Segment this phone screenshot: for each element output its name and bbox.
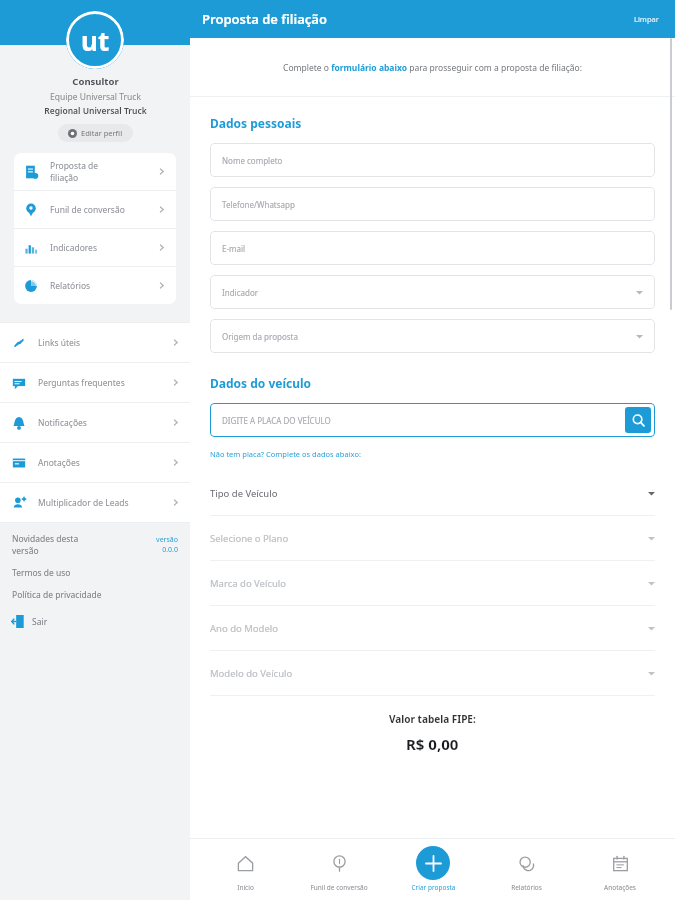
staticText: Proposta de filiação: [50, 160, 99, 184]
button[interactable]: Selecione o Plano: [210, 516, 655, 561]
staticText: Política de privacidade: [12, 589, 102, 601]
button[interactable]: Limpar: [630, 10, 663, 28]
button[interactable]: Sair: [0, 615, 190, 628]
button[interactable]: Anotações: [581, 846, 659, 892]
staticText: Criar proposta: [411, 883, 456, 892]
button[interactable]: Ano do Modelo: [210, 606, 655, 651]
button[interactable]: Buscar placa: [625, 407, 651, 433]
staticText: Nome completo: [222, 155, 283, 166]
button[interactable]: Editar perfil: [58, 124, 133, 142]
staticText: Perguntas frequentes: [38, 377, 125, 389]
button[interactable]: E-mail: [210, 231, 655, 265]
button[interactable]: Relatórios: [14, 267, 176, 304]
staticText: Equipe Universal Truck: [50, 91, 141, 103]
staticText: Relatórios: [511, 883, 542, 892]
button[interactable]: Política de privacidade: [0, 589, 190, 601]
button[interactable]: Novidades desta versão: [0, 533, 190, 557]
button[interactable]: Links úteis: [0, 323, 190, 362]
button[interactable]: Perguntas frequentes: [0, 363, 190, 402]
staticText: Dados pessoais: [210, 115, 302, 131]
button[interactable]: Proposta de filiação: [14, 153, 176, 190]
button[interactable]: Relatórios: [487, 846, 565, 892]
staticText: Sair: [32, 616, 48, 628]
button[interactable]: Indicadores: [14, 229, 176, 266]
button[interactable]: Modelo do Veículo: [210, 651, 655, 696]
staticText: Ano do Modelo: [210, 622, 278, 635]
staticText: Dados do veículo: [210, 375, 312, 391]
staticText: Anotações: [604, 883, 636, 892]
staticText: Multiplicador de Leads: [38, 497, 129, 509]
staticText: Tipo de Veículo: [210, 487, 278, 500]
staticText: Complete o formulário abaixo para prosse…: [283, 62, 582, 74]
staticText: Indicadores: [50, 242, 97, 254]
staticText: Limpar: [634, 14, 659, 24]
button[interactable]: Início: [206, 846, 284, 892]
button[interactable]: Funil de conversão: [300, 846, 378, 892]
staticText: Funil de conversão: [310, 883, 368, 892]
staticText: Novidades desta versão: [12, 533, 79, 557]
staticText: Início: [237, 883, 254, 892]
button[interactable]: Marca do Veículo: [210, 561, 655, 606]
button[interactable]: Indicador: [210, 275, 655, 309]
staticText: versão 0.0.0: [156, 535, 178, 555]
staticText: Anotações: [38, 457, 80, 469]
button[interactable]: Funil de conversão: [14, 191, 176, 228]
staticText: Proposta de filiação: [202, 10, 327, 28]
button[interactable]: Notificações: [0, 403, 190, 442]
staticText: Origem da proposta: [222, 331, 298, 342]
button[interactable]: Termos de uso: [0, 567, 190, 579]
button[interactable]: Origem da proposta: [210, 319, 655, 353]
staticText: Telefone/Whatsapp: [222, 199, 295, 210]
staticText: Não tem placa? Complete os dados abaixo:: [210, 449, 361, 459]
staticText: Editar perfil: [81, 128, 123, 138]
staticText: Indicador: [222, 287, 259, 298]
button[interactable]: Anotações: [0, 443, 190, 482]
staticText: Termos de uso: [12, 567, 71, 579]
staticText: Links úteis: [38, 337, 81, 349]
button[interactable]: DIGITE A PLACA DO VEÍCULO: [222, 415, 625, 426]
staticText: DIGITE A PLACA DO VEÍCULO: [222, 415, 331, 426]
staticText: Marca do Veículo: [210, 577, 287, 590]
staticText: R$ 0,00: [406, 734, 459, 754]
button[interactable]: Criar proposta: [394, 846, 472, 892]
button[interactable]: Multiplicador de Leads: [0, 483, 190, 522]
staticText: E-mail: [222, 243, 246, 254]
staticText: Selecione o Plano: [210, 532, 289, 545]
button[interactable]: Não tem placa? Complete os dados abaixo:: [210, 449, 361, 459]
button[interactable]: Nome completo: [210, 143, 655, 177]
staticText: Relatórios: [50, 280, 91, 292]
button[interactable]: Telefone/Whatsapp: [210, 187, 655, 221]
staticText: Valor tabela FIPE:: [389, 712, 476, 726]
staticText: Regional Universal Truck: [44, 105, 147, 117]
staticText: ut: [81, 23, 110, 58]
button[interactable]: Tipo de Veículo: [210, 471, 655, 516]
staticText: Notificações: [38, 417, 87, 429]
staticText: Modelo do Veículo: [210, 667, 293, 680]
staticText: Consultor: [72, 75, 119, 88]
staticText: Funil de conversão: [50, 204, 125, 216]
